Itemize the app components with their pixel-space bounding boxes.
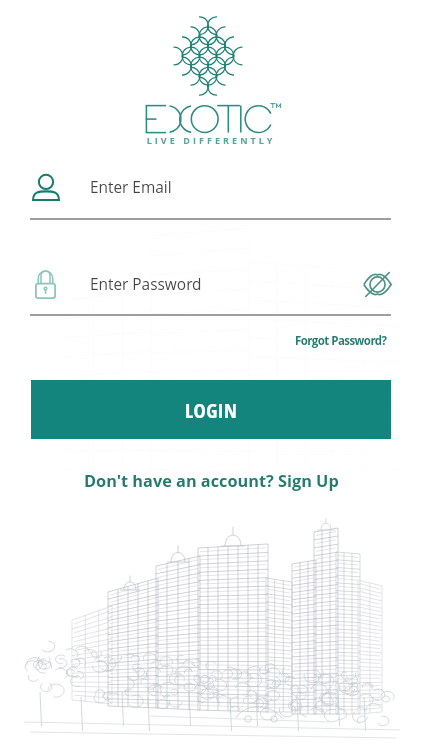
button[interactable]: Don't have an account? Sign Up: [80, 467, 343, 495]
button[interactable]: Enter Email: [30, 162, 391, 213]
button[interactable]: Enter Password: [30, 259, 391, 309]
button[interactable]: Show password: [360, 267, 394, 301]
button[interactable]: LOGIN: [31, 380, 391, 439]
staticText: LOGIN: [185, 396, 238, 424]
staticText: Forgot Password?: [295, 333, 387, 349]
staticText: LIVE DIFFERENTLY: [0, 134, 422, 146]
staticText: Enter Email: [90, 177, 172, 198]
button[interactable]: Forgot Password?: [293, 330, 389, 352]
staticText: Enter Password: [90, 274, 202, 295]
staticText: Don't have an account? Sign Up: [84, 470, 339, 492]
